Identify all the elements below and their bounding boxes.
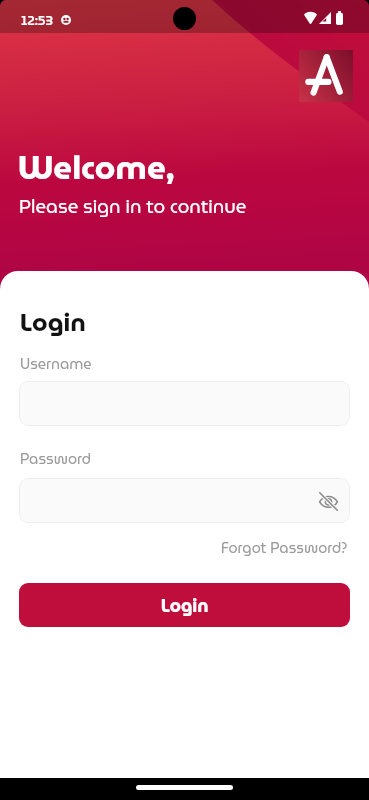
- button[interactable]: Forgot Password?: [221, 536, 348, 559]
- staticText: Login: [20, 302, 86, 342]
- staticText: Password: [20, 447, 92, 470]
- button[interactable]: App logo: [299, 50, 353, 102]
- button[interactable]: Toggle password visibility: [314, 487, 342, 515]
- button[interactable]: Login: [19, 583, 350, 627]
- staticText: Please sign in to continue: [19, 192, 247, 221]
- staticText: Username: [20, 352, 92, 375]
- staticText: Login: [161, 591, 209, 620]
- staticText: 12:53: [21, 10, 53, 31]
- button[interactable]: Toggle password visibility: [19, 478, 350, 523]
- staticText: Welcome,: [18, 141, 175, 193]
